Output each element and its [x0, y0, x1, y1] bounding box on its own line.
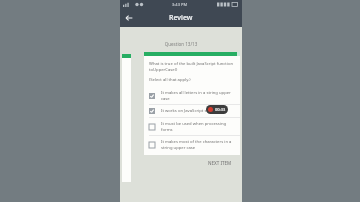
button[interactable]: 00:33 — [206, 105, 228, 114]
staticText: What is true of the built JavaScript fun… — [149, 61, 235, 73]
staticText: 00:33 — [215, 107, 226, 112]
staticText: Review — [169, 13, 193, 23]
staticText: It must be used when processing forms — [161, 121, 235, 132]
staticText: It makes most of the characters in a str… — [161, 139, 235, 150]
staticText: (Select all that apply.) — [149, 77, 191, 83]
button[interactable]: It must be used when processing forms — [144, 118, 240, 135]
button[interactable]: It makes all letters in a string upper c… — [144, 87, 240, 104]
button[interactable]: It makes most of the characters in a str… — [144, 136, 240, 153]
staticText: It works on JavaScript strings — [161, 108, 218, 114]
button[interactable]: It works on JavaScript strings — [144, 105, 240, 117]
button[interactable]: Back — [122, 11, 136, 25]
staticText: NEXT ITEM — [208, 160, 232, 166]
button[interactable]: NEXT ITEM — [206, 158, 234, 168]
staticText: Question 13/13 — [120, 41, 242, 47]
staticText: 3:43 PM — [172, 2, 188, 7]
staticText: It makes all letters in a string upper c… — [161, 90, 235, 101]
